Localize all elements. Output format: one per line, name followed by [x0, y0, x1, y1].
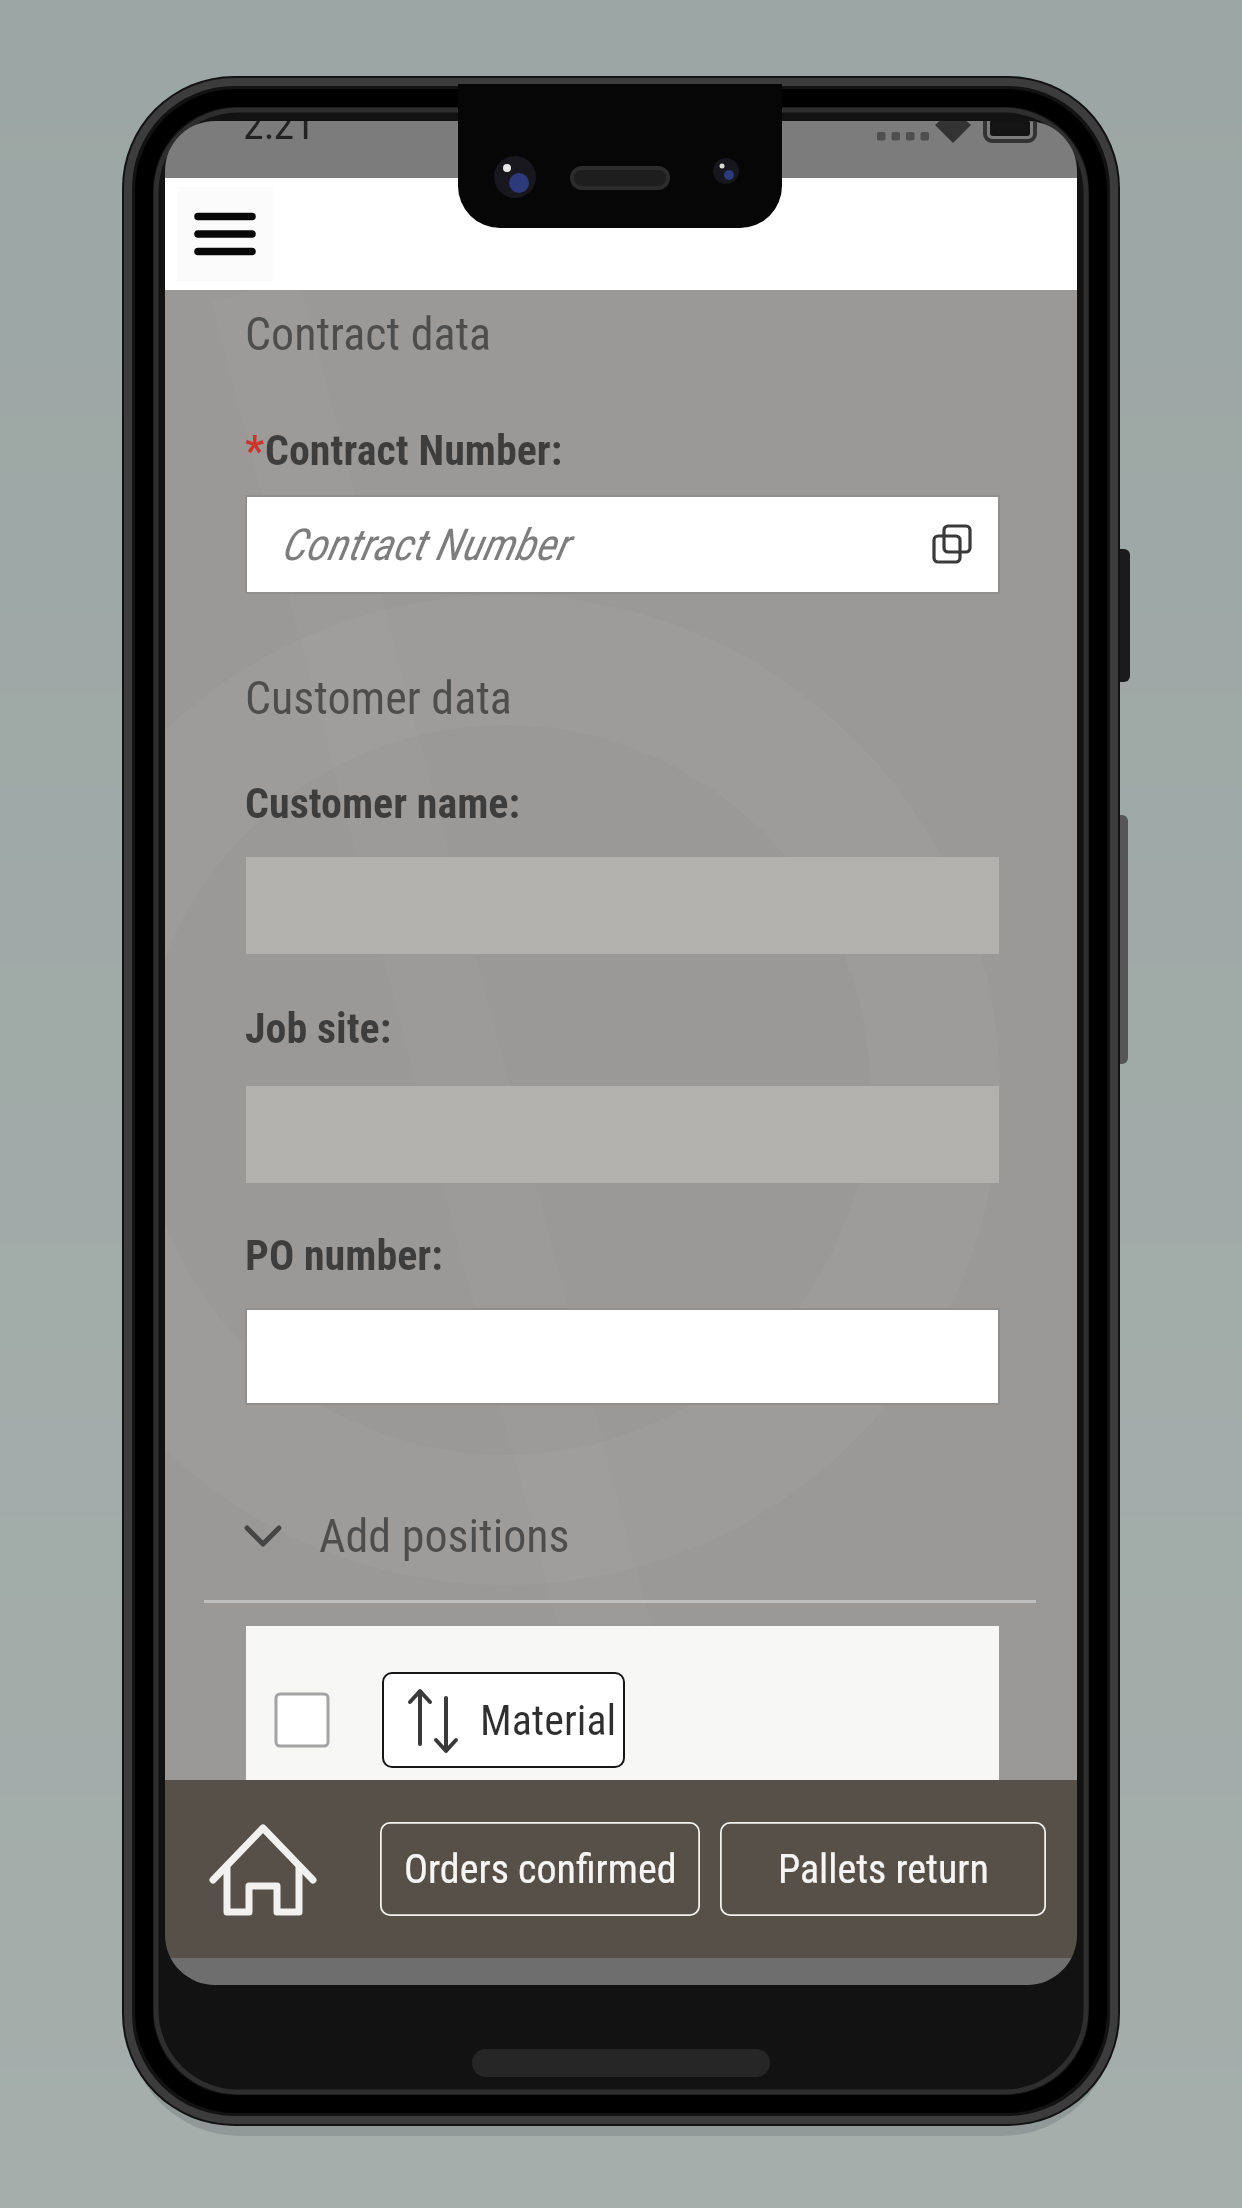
- staticText: 2:21: [243, 121, 316, 149]
- button[interactable]: [246, 1309, 999, 1404]
- button[interactable]: Add positions: [245, 1509, 570, 1563]
- button[interactable]: [177, 187, 273, 281]
- staticText: Customer name:: [245, 779, 521, 828]
- button[interactable]: [205, 1818, 321, 1918]
- button[interactable]: [276, 1694, 328, 1746]
- staticText: Orders confirmed: [404, 1846, 677, 1893]
- staticText: Add positions: [319, 1509, 570, 1563]
- staticText: Material: [480, 1696, 617, 1745]
- button[interactable]: Contract Number: [246, 496, 999, 593]
- button[interactable]: Pallets return: [720, 1822, 1046, 1916]
- staticText: Contract Number:: [265, 426, 563, 475]
- staticText: Job site:: [245, 1004, 392, 1053]
- staticText: PO number:: [245, 1231, 443, 1280]
- staticText: Pallets return: [778, 1846, 989, 1893]
- button[interactable]: Orders confirmed: [380, 1822, 700, 1916]
- staticText: Contract data: [245, 307, 492, 361]
- staticText: Contract Number: [281, 519, 569, 571]
- staticText: *: [245, 426, 265, 475]
- button[interactable]: Material: [382, 1672, 625, 1768]
- staticText: Customer data: [245, 671, 512, 725]
